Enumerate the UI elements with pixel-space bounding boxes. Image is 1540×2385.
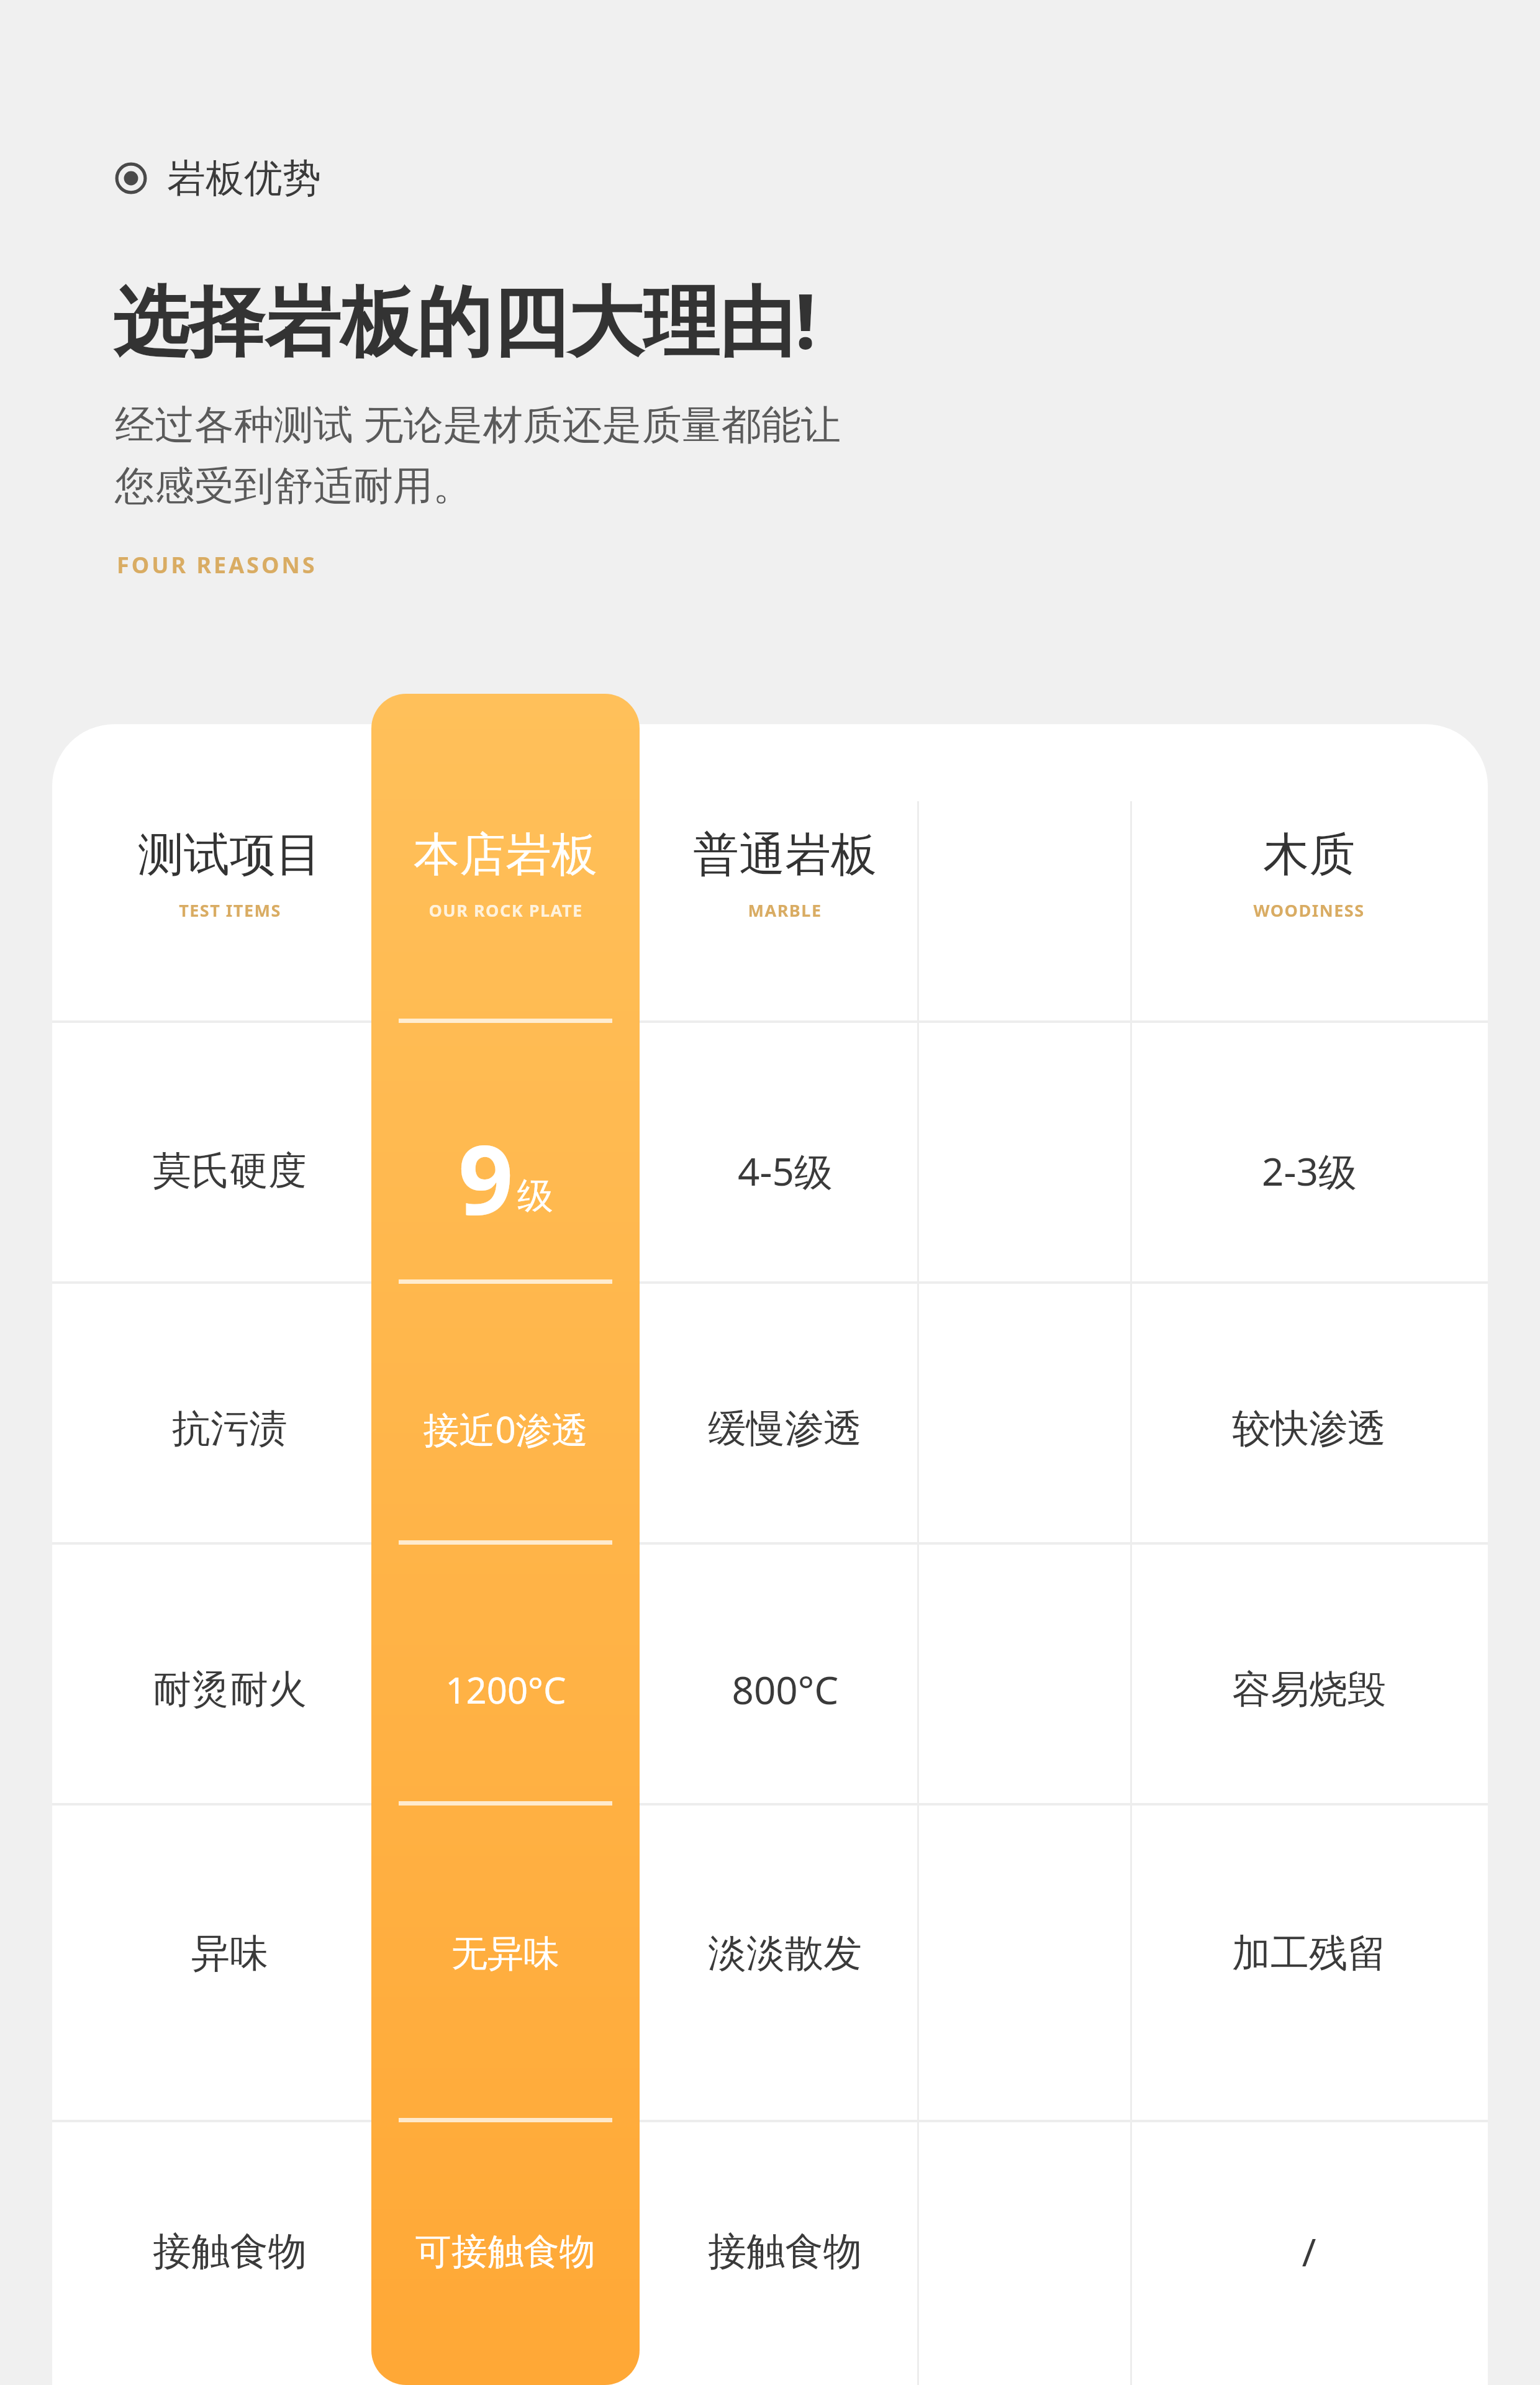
button[interactable]: 800°C [651, 1643, 918, 1736]
staticText: 岩板优势 [167, 154, 321, 202]
staticText: 缓慢渗透 [708, 1404, 862, 1453]
staticText: WOODINESS [1253, 899, 1365, 922]
staticText: MARBLE [748, 899, 822, 922]
staticText: 接触食物 [153, 2227, 307, 2276]
button[interactable]: 普通岩板 [651, 826, 918, 981]
staticText: 可接触食物 [415, 2229, 596, 2274]
staticText: 抗污渍 [172, 1404, 288, 1453]
staticText: 接触食物 [708, 2227, 862, 2276]
button[interactable] [371, 694, 640, 2385]
button[interactable]: 抗污渍 [96, 1382, 363, 1475]
staticText: 加工残留 [1232, 1929, 1386, 1978]
button[interactable]: 接触食物 [651, 2205, 918, 2298]
button[interactable]: 测试项目 [96, 826, 363, 981]
staticText: 测试项目 [138, 826, 322, 884]
staticText: 选择岩板的四大理由! [113, 268, 817, 371]
button[interactable]: 可接触食物 [372, 2205, 639, 2298]
button[interactable]: 无异味 [372, 1907, 639, 2000]
button[interactable]: 耐烫耐火 [96, 1643, 363, 1736]
button[interactable]: 9 [372, 1112, 639, 1230]
staticText: 无异味 [451, 1931, 559, 1976]
staticText: 较快渗透 [1232, 1404, 1386, 1453]
staticText: FOUR REASONS [117, 550, 317, 580]
staticText: 800°C [731, 1663, 839, 1715]
button[interactable]: 1200°C [372, 1643, 639, 1736]
staticText: 淡淡散发 [708, 1929, 862, 1978]
staticText: 4-5级 [738, 1145, 833, 1197]
staticText: 经过各种测试 无论是材质还是质量都能让 您感受到舒适耐用。 [115, 396, 841, 511]
staticText: 木质 [1263, 826, 1355, 884]
staticText: 异味 [191, 1929, 268, 1978]
button[interactable]: 淡淡散发 [651, 1907, 918, 2000]
button[interactable]: 木质 [1175, 826, 1443, 981]
staticText: 1200°C [445, 1665, 566, 1714]
button[interactable]: 接触食物 [96, 2205, 363, 2298]
staticText: TEST ITEMS [179, 899, 281, 922]
button[interactable]: 容易烧毁 [1175, 1643, 1443, 1736]
staticText: / [1302, 2225, 1316, 2278]
staticText: 2-3级 [1262, 1145, 1357, 1197]
button[interactable]: 异味 [96, 1907, 363, 2000]
staticText: 普通岩板 [693, 826, 877, 884]
staticText: OUR ROCK PLATE [428, 899, 583, 922]
button[interactable]: 岩板优势 [115, 154, 321, 202]
button[interactable]: 较快渗透 [1175, 1382, 1443, 1475]
button[interactable]: 莫氏硬度 [96, 1124, 363, 1217]
button[interactable]: 4-5级 [651, 1124, 918, 1217]
button[interactable]: 缓慢渗透 [651, 1382, 918, 1475]
staticText: 容易烧毁 [1232, 1665, 1386, 1714]
staticText: 本店岩板 [414, 826, 597, 884]
staticText: 莫氏硬度 [153, 1147, 307, 1195]
button[interactable]: / [1175, 2205, 1443, 2298]
staticText: 耐烫耐火 [153, 1665, 307, 1714]
staticText: 9 [458, 1112, 514, 1230]
button[interactable]: 加工残留 [1175, 1907, 1443, 2000]
button[interactable]: 本店岩板 [372, 826, 639, 981]
button[interactable]: 接近0渗透 [372, 1382, 639, 1475]
staticText: 接近0渗透 [423, 1404, 588, 1453]
staticText: 级 [517, 1173, 553, 1219]
button[interactable]: 2-3级 [1175, 1124, 1443, 1217]
